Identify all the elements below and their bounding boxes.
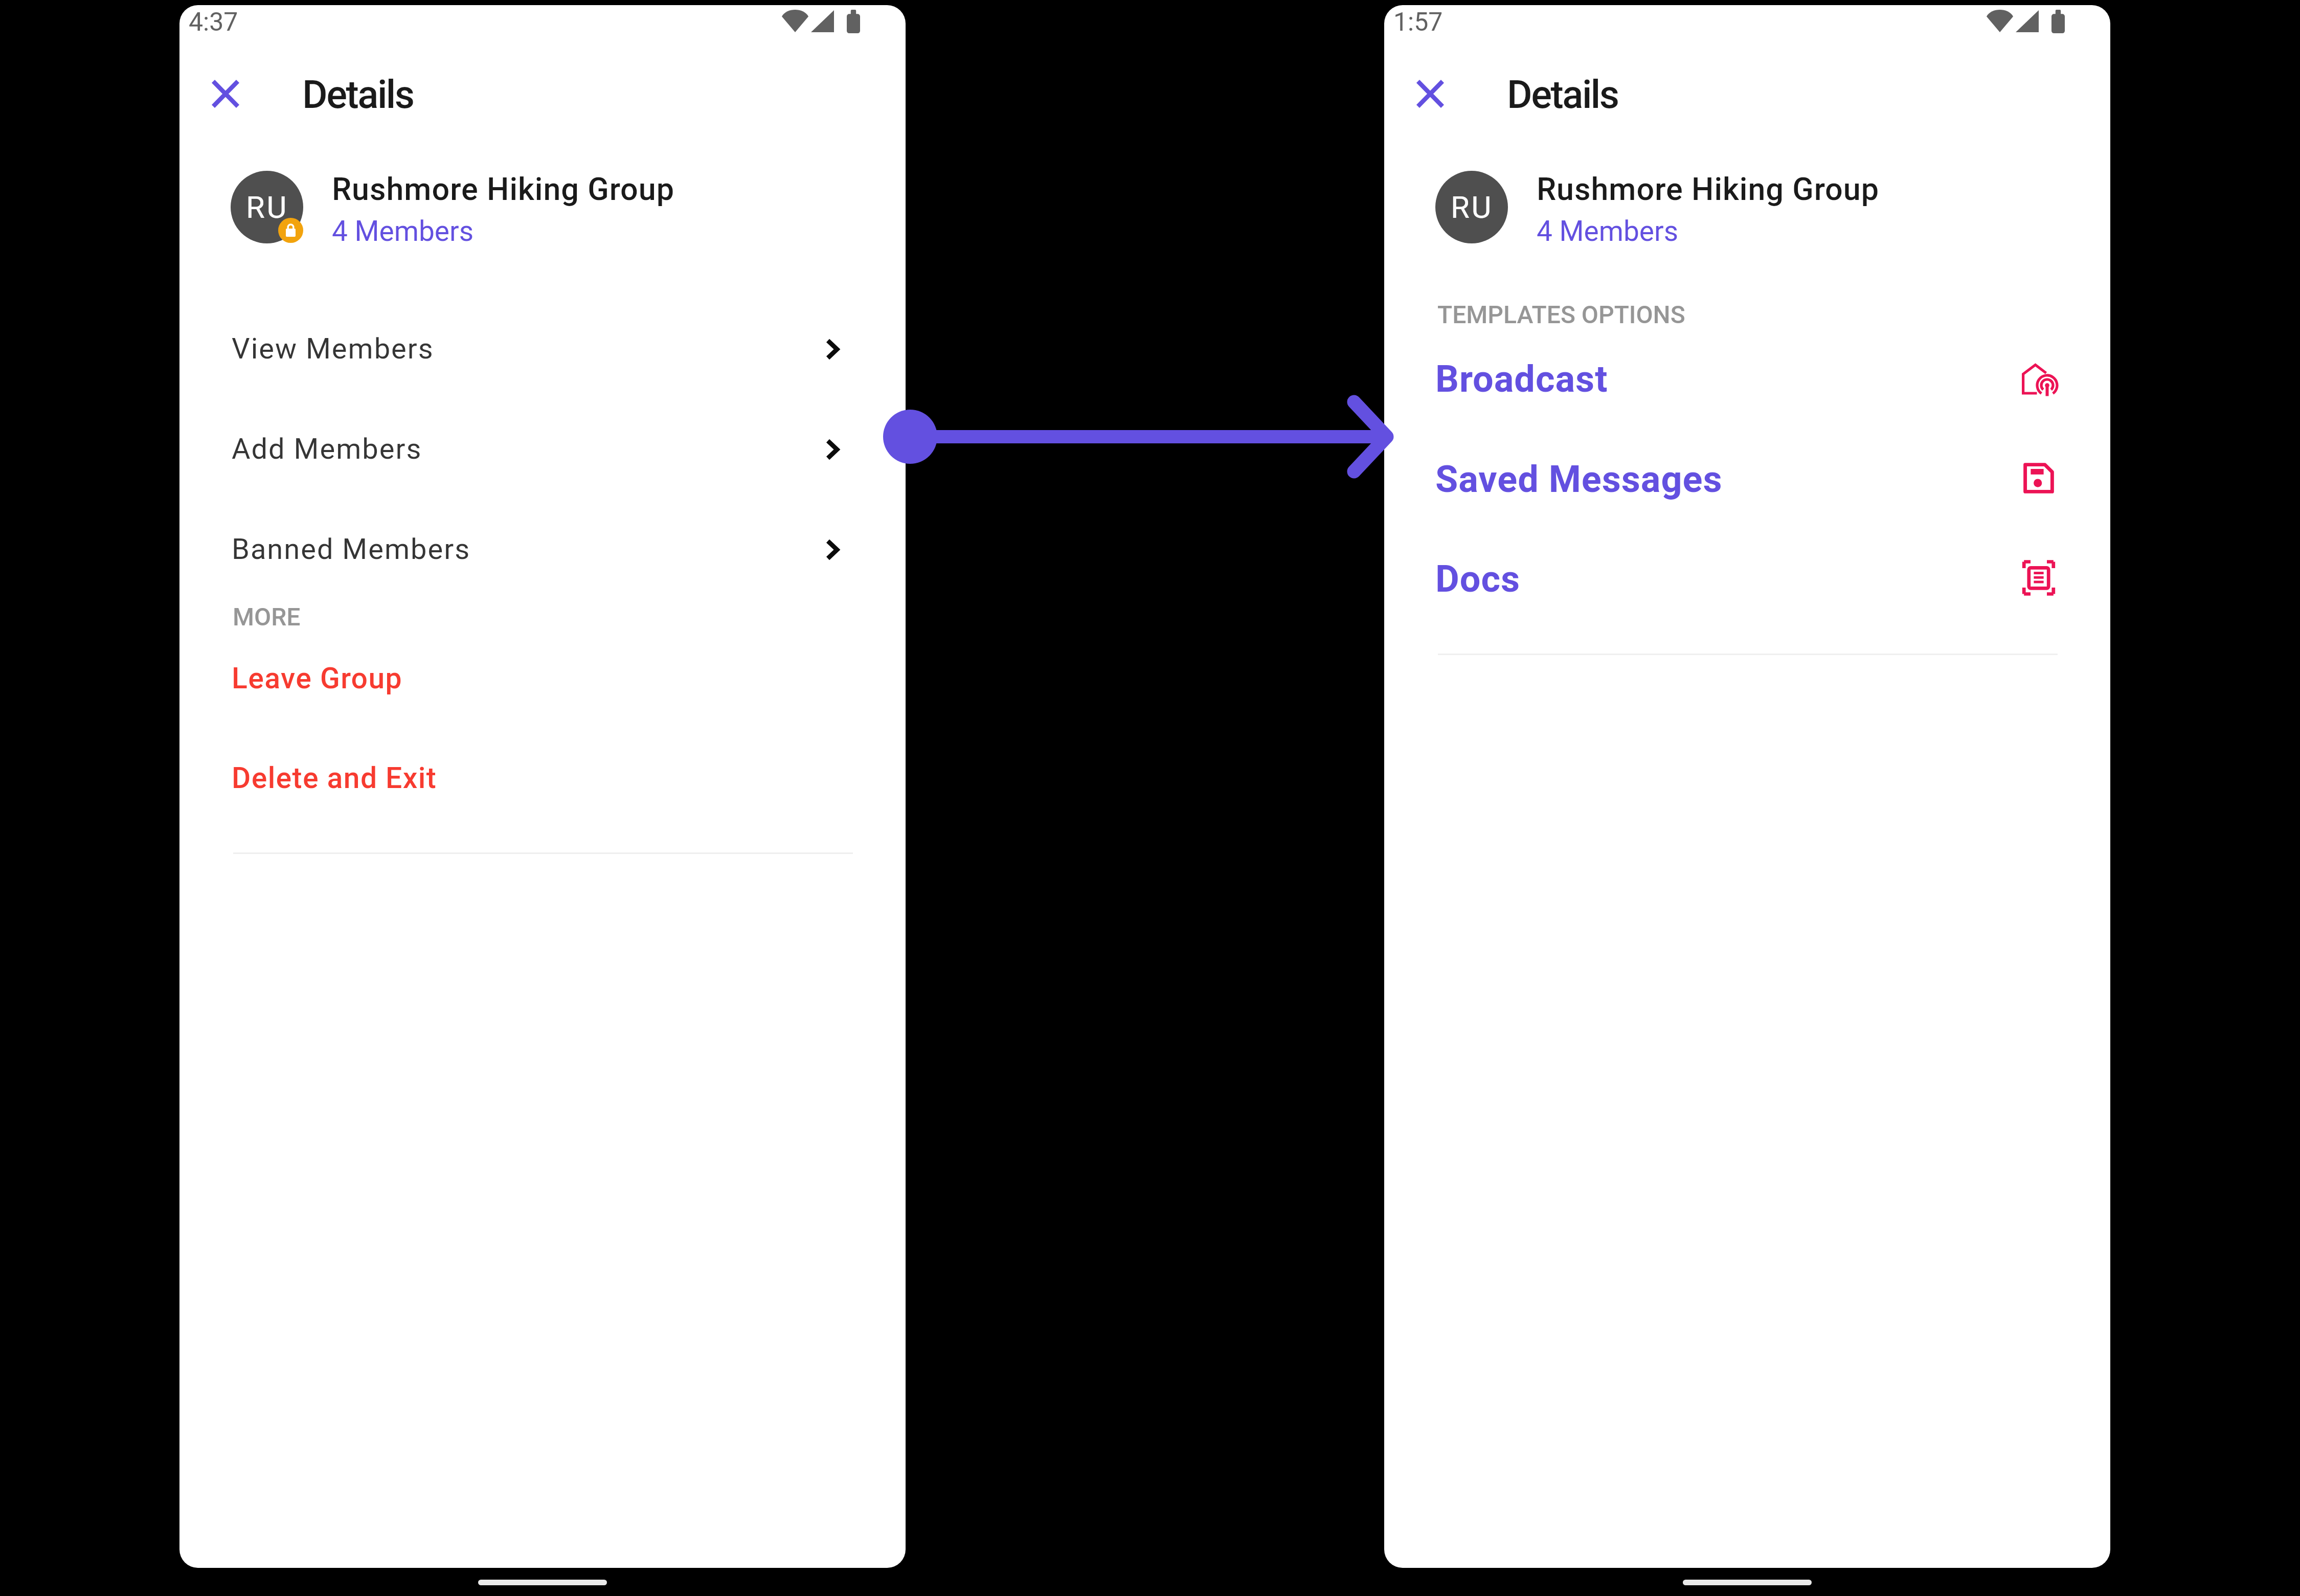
other: Broadcast	[2022, 365, 2058, 397]
button[interactable]: View Members	[179, 307, 906, 384]
staticText: Saved Messages	[1435, 458, 1723, 501]
button[interactable]: RU	[1423, 159, 1986, 256]
staticText: 1:57	[1393, 7, 1443, 37]
staticText: RU	[1451, 189, 1493, 225]
staticText: Leave Group	[232, 661, 403, 695]
button[interactable]: Close	[1400, 63, 1461, 124]
button[interactable]: Banned Members	[179, 507, 906, 584]
staticText: Banned Members	[232, 532, 471, 566]
staticText: Docs	[1435, 557, 1521, 600]
staticText: Broadcast	[1435, 357, 1608, 400]
button[interactable]: Broadcast	[1384, 333, 2110, 415]
staticText: Rushmore Hiking Group	[332, 171, 675, 207]
button[interactable]: RU	[218, 159, 781, 256]
staticText: 4:37	[189, 7, 238, 37]
staticText: Rushmore Hiking Group	[1537, 171, 1880, 207]
button[interactable]: Close	[195, 63, 256, 124]
button[interactable]: Add Members	[179, 407, 906, 484]
other: Docs	[2022, 560, 2055, 596]
button[interactable]: Saved Messages	[1384, 433, 2110, 515]
staticText: Details	[1507, 72, 1618, 117]
staticText: 4 Members	[332, 215, 474, 248]
staticText: Delete and Exit	[232, 761, 437, 795]
button[interactable]: Leave Group	[179, 637, 906, 709]
button[interactable]: Delete and Exit	[179, 737, 906, 808]
staticText: RU	[246, 189, 288, 225]
button[interactable]: Docs	[1384, 533, 2110, 615]
staticText: Details	[302, 72, 414, 117]
staticText: TEMPLATES OPTIONS	[1437, 300, 1685, 329]
other: Saved Messages	[2023, 463, 2054, 493]
staticText: 4 Members	[1537, 215, 1679, 248]
staticText: Add Members	[232, 432, 422, 466]
staticText: View Members	[232, 332, 434, 366]
staticText: MORE	[233, 602, 301, 631]
